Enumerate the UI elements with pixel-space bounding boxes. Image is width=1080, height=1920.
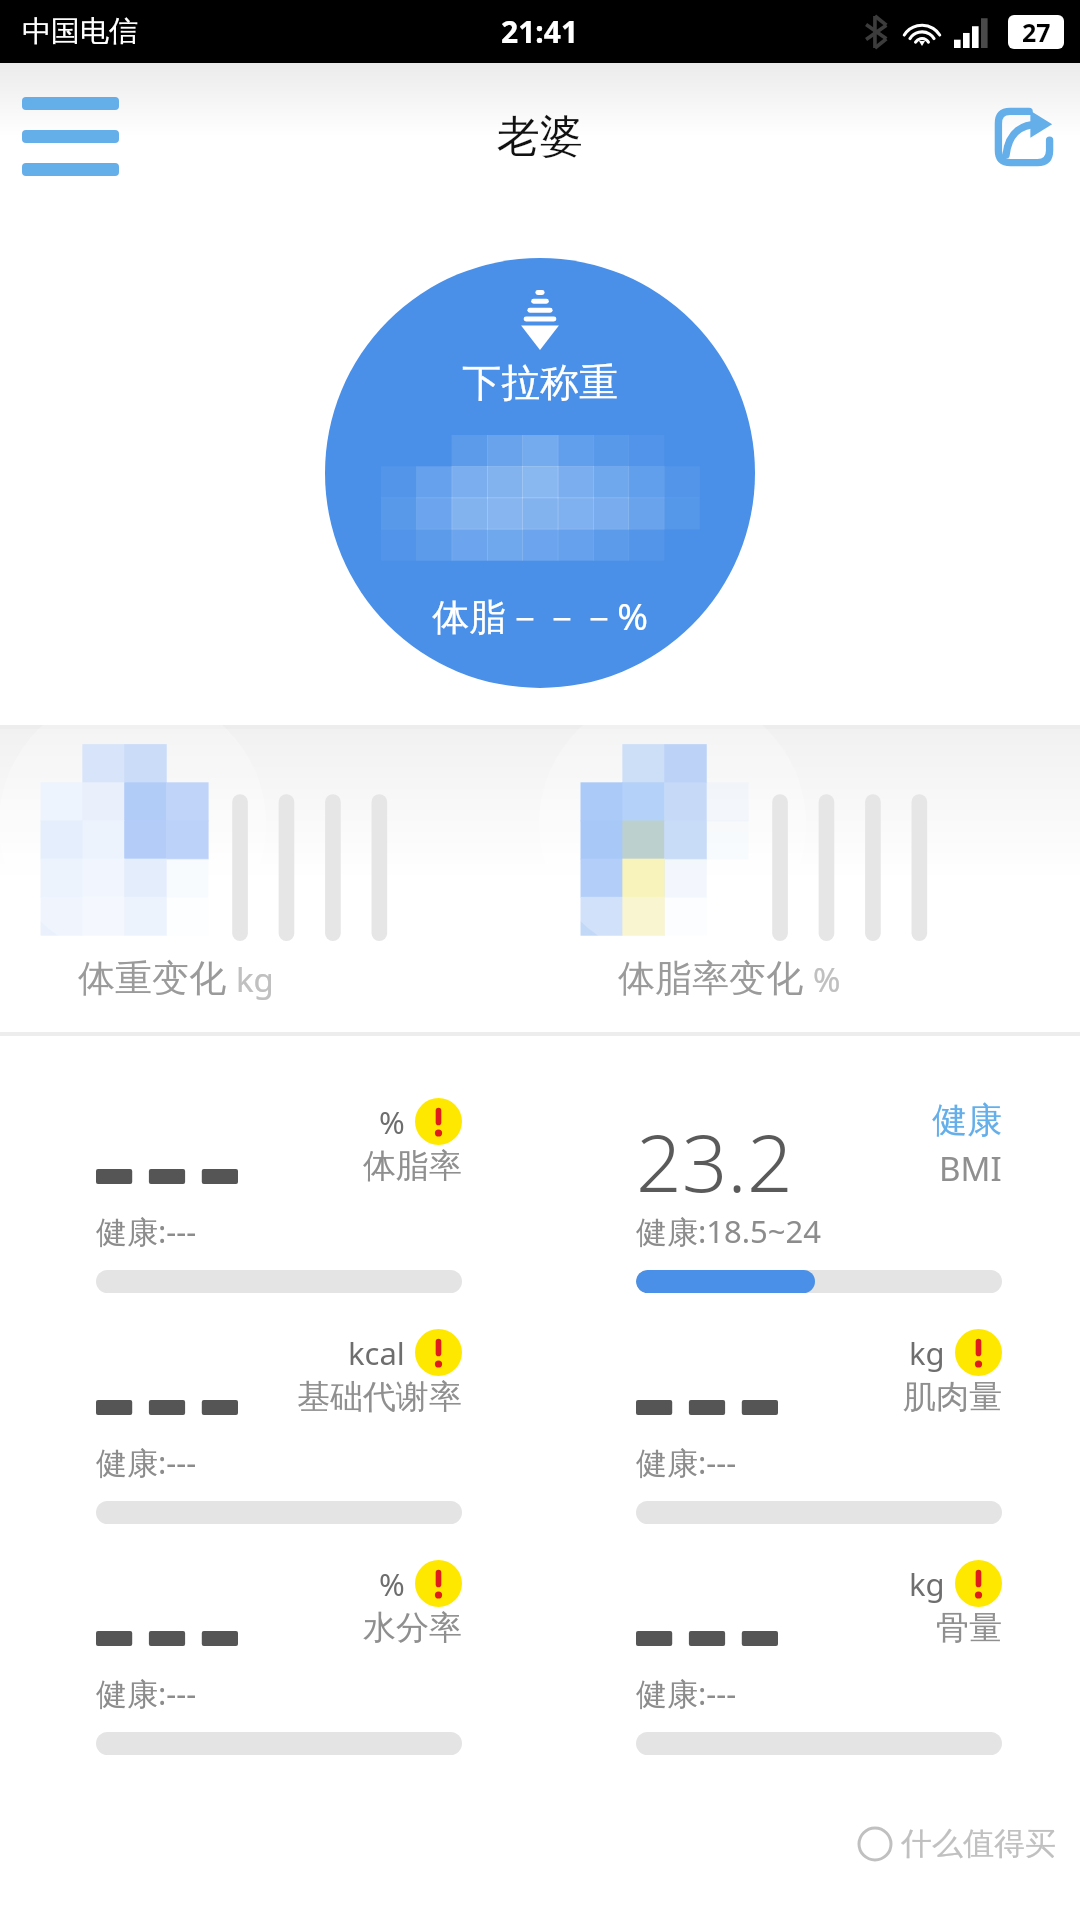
button[interactable]: % — [0, 1098, 540, 1293]
staticText: % — [379, 1563, 405, 1605]
staticText: 体脂率变化 — [618, 955, 803, 1002]
staticText: 肌肉量 — [903, 1376, 1002, 1418]
staticText: % — [379, 1101, 405, 1143]
button[interactable]: Menu — [16, 91, 125, 182]
button[interactable]: 23.2 — [540, 1098, 1080, 1293]
staticText: 健康:--- — [636, 1672, 737, 1714]
staticText: kcal — [348, 1332, 405, 1374]
staticText: 老婆 — [497, 110, 583, 164]
button[interactable]: kg — [540, 1560, 1080, 1755]
button[interactable]: 体重变化 — [0, 729, 540, 1032]
staticText: 基础代谢率 — [297, 1376, 462, 1418]
button[interactable]: % — [0, 1560, 540, 1755]
button[interactable]: Pull down to weigh — [325, 258, 755, 688]
staticText: 中国电信 — [22, 13, 138, 50]
button[interactable]: Share — [982, 95, 1066, 179]
staticText: 健康:--- — [96, 1210, 197, 1252]
staticText: 体脂率 — [363, 1145, 462, 1187]
button[interactable]: 体脂率变化 — [540, 729, 1080, 1032]
staticText: 骨量 — [936, 1607, 1002, 1649]
staticText: BMI — [939, 1146, 1002, 1191]
staticText: 水分率 — [363, 1607, 462, 1649]
button[interactable]: kg — [540, 1329, 1080, 1524]
staticText: 什么值得买 — [901, 1824, 1056, 1863]
staticText: 健康:18.5~24 — [636, 1210, 822, 1252]
staticText: 健康:--- — [96, 1672, 197, 1714]
staticText: % — [813, 957, 841, 1002]
staticText: 健康:--- — [96, 1441, 197, 1483]
staticText: 27 — [1022, 15, 1051, 49]
staticText: kg — [909, 1332, 945, 1374]
staticText: 体重变化 — [78, 955, 226, 1002]
staticText: kg — [909, 1563, 945, 1605]
staticText: 下拉称重 — [462, 358, 618, 407]
staticText: 21:41 — [501, 11, 579, 52]
staticText: 体脂－－－% — [432, 590, 648, 641]
staticText: kg — [236, 957, 274, 1002]
staticText: 健康 — [932, 1098, 1002, 1142]
staticText: 23.2 — [636, 1106, 793, 1210]
staticText: 健康:--- — [636, 1441, 737, 1483]
button[interactable]: kcal — [0, 1329, 540, 1524]
